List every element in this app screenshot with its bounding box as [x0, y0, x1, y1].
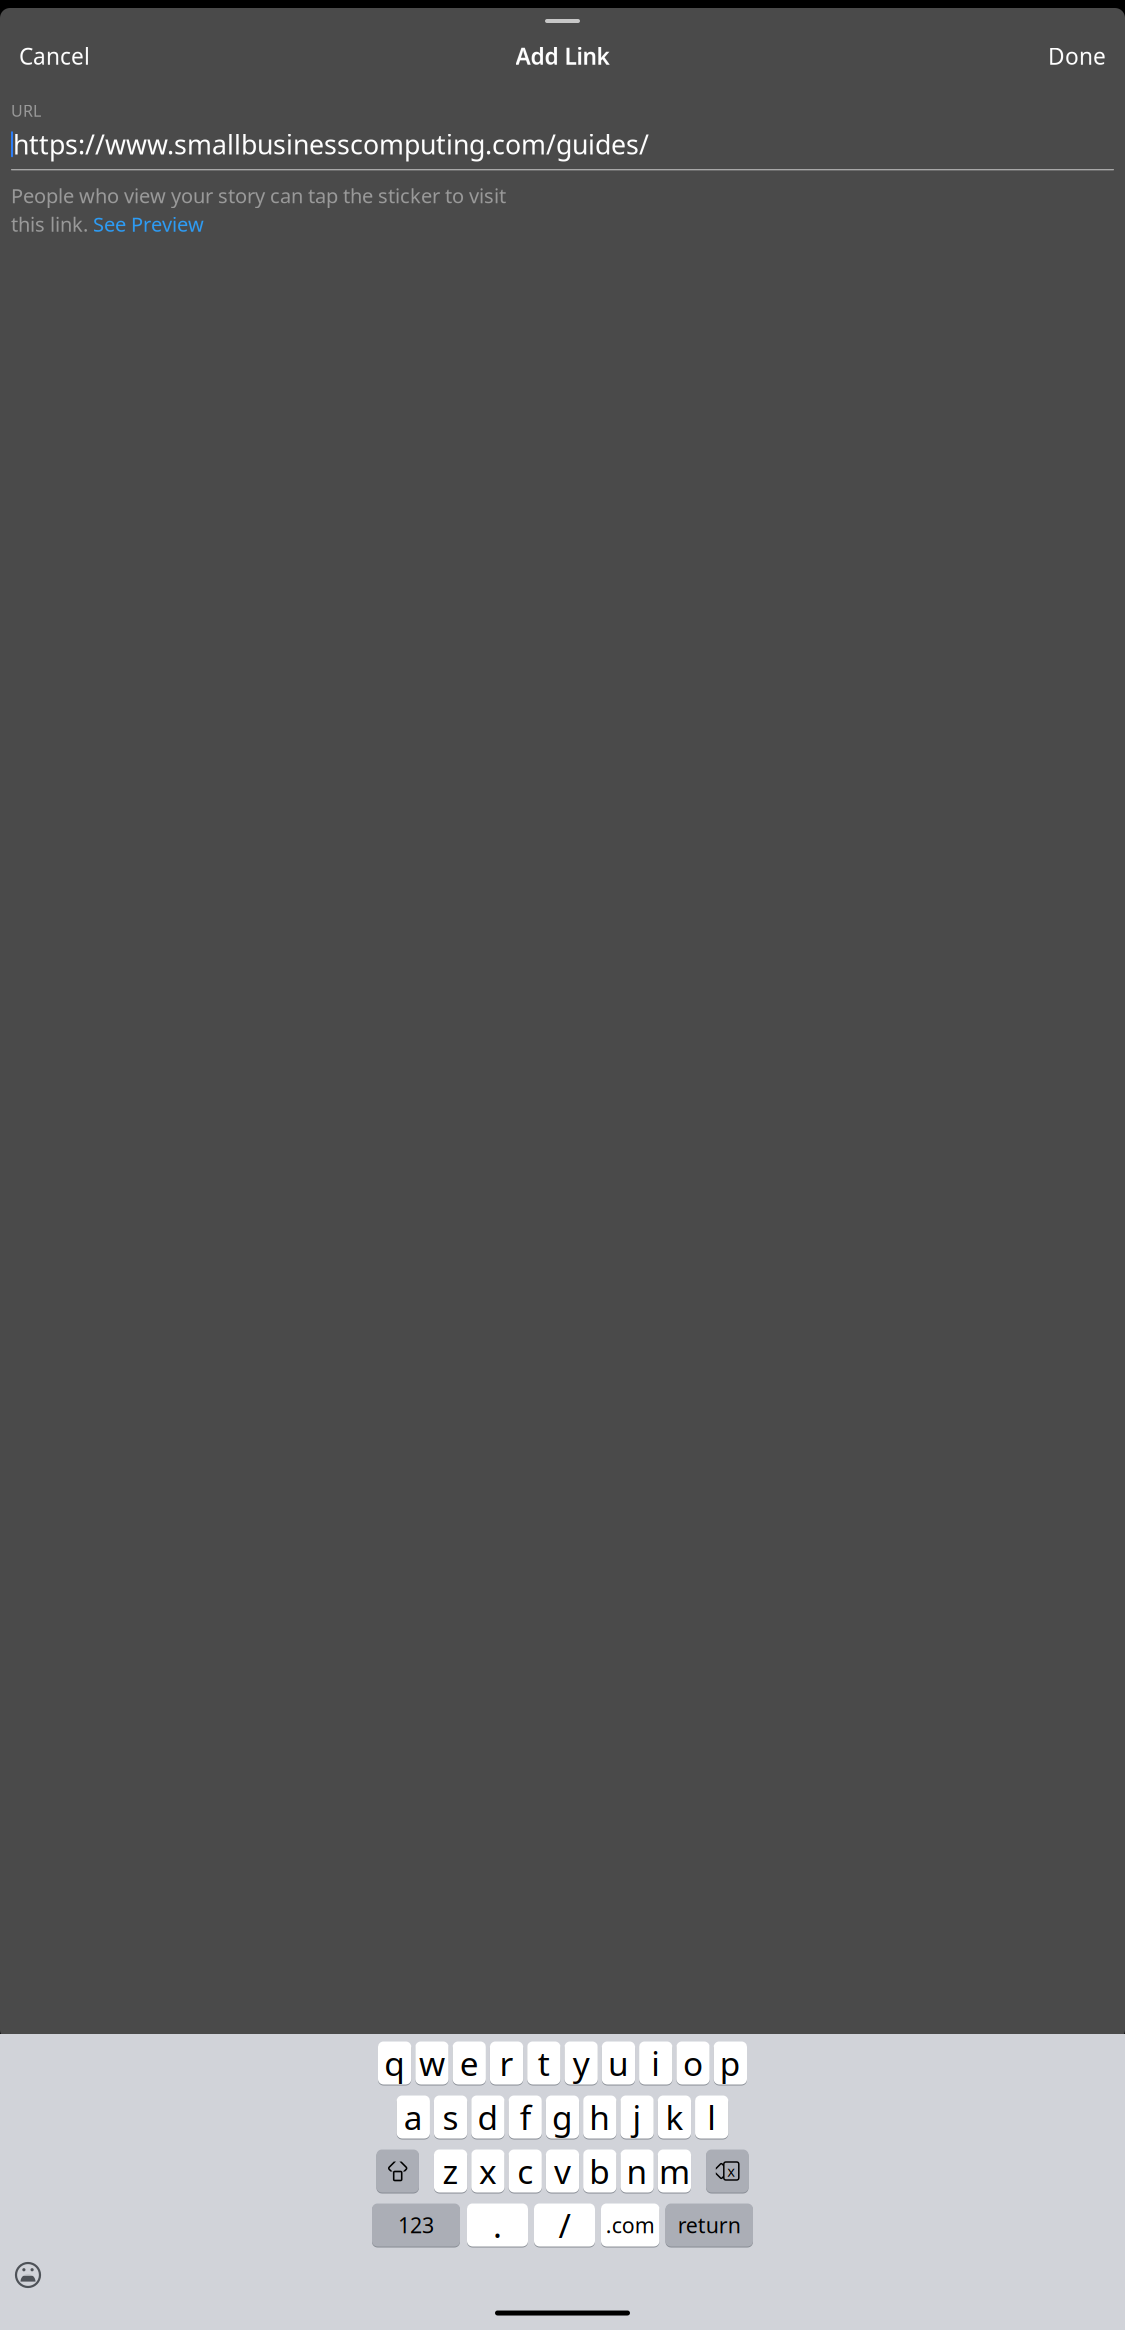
staticText: v [554, 2149, 571, 2193]
button[interactable]: g [546, 2095, 579, 2139]
staticText: u [608, 2041, 629, 2085]
staticText: l [707, 2095, 716, 2139]
staticText: g [552, 2095, 573, 2139]
staticText: t [538, 2041, 550, 2085]
button[interactable]: .com [601, 2203, 659, 2247]
staticText: p [720, 2041, 741, 2085]
staticText: j [633, 2095, 642, 2139]
staticText: https://www.smallbusinesscomputing.com/g… [13, 126, 649, 162]
staticText: return [678, 2211, 741, 2239]
button[interactable]: a [397, 2095, 430, 2139]
button[interactable]: r [490, 2041, 523, 2085]
button[interactable]: / [534, 2203, 595, 2247]
staticText: s [443, 2095, 459, 2139]
staticText: f [520, 2095, 531, 2139]
staticText: Done [1048, 41, 1106, 71]
button[interactable]: f [508, 2095, 542, 2139]
button[interactable]: t [527, 2041, 560, 2085]
staticText: . [493, 2203, 502, 2247]
button[interactable]: w [415, 2041, 449, 2085]
staticText: k [665, 2095, 683, 2139]
button[interactable]: Cancel [9, 33, 100, 79]
staticText: z [443, 2149, 459, 2193]
button[interactable]: c [508, 2149, 542, 2193]
button[interactable]: Done [1038, 33, 1116, 79]
button[interactable]: k [658, 2095, 691, 2139]
staticText: o [683, 2041, 703, 2085]
button[interactable]: z [434, 2149, 467, 2193]
button[interactable]: Shift [376, 2149, 419, 2193]
staticText: m [659, 2149, 690, 2193]
staticText: i [651, 2041, 660, 2085]
button[interactable]: d [471, 2095, 504, 2139]
staticText: Cancel [19, 41, 90, 71]
staticText: e [460, 2041, 479, 2085]
staticText: .com [606, 2211, 655, 2239]
staticText: / [558, 2203, 570, 2247]
staticText: this link. [11, 211, 88, 237]
button[interactable]: See Preview [93, 211, 204, 237]
staticText: 123 [398, 2211, 434, 2239]
staticText: x [727, 2161, 735, 2181]
staticText: c [517, 2149, 533, 2193]
button[interactable]: e [453, 2041, 486, 2085]
button[interactable]: x [471, 2149, 504, 2193]
button[interactable]: m [658, 2149, 691, 2193]
button[interactable]: Emoji [6, 2255, 50, 2295]
button[interactable]: 123 [372, 2203, 460, 2247]
staticText: y [573, 2041, 590, 2085]
button[interactable]: Delete [706, 2149, 748, 2193]
staticText: n [627, 2149, 648, 2193]
button[interactable]: l [695, 2095, 728, 2139]
staticText: x [479, 2149, 497, 2193]
staticText: See Preview [93, 211, 204, 237]
button[interactable]: j [620, 2095, 654, 2139]
staticText: d [477, 2095, 498, 2139]
button[interactable]: y [564, 2041, 598, 2085]
button[interactable]: p [714, 2041, 747, 2085]
staticText: a [404, 2095, 423, 2139]
staticText: URL [11, 100, 41, 121]
staticText: Add Link [515, 41, 609, 71]
staticText: People who view your story can tap the s… [11, 182, 506, 209]
button[interactable]: i [639, 2041, 672, 2085]
staticText: q [384, 2041, 405, 2085]
button[interactable]: b [583, 2149, 616, 2193]
button[interactable]: return [665, 2203, 753, 2247]
button[interactable]: u [602, 2041, 635, 2085]
button[interactable]: . [467, 2203, 528, 2247]
button[interactable]: q [378, 2041, 411, 2085]
button[interactable]: s [434, 2095, 467, 2139]
button[interactable]: o [676, 2041, 710, 2085]
button[interactable]: n [620, 2149, 654, 2193]
staticText: w [419, 2041, 445, 2085]
staticText: h [589, 2095, 610, 2139]
staticText: b [589, 2149, 610, 2193]
button[interactable]: h [583, 2095, 616, 2139]
staticText: r [499, 2041, 513, 2085]
button[interactable]: v [546, 2149, 579, 2193]
